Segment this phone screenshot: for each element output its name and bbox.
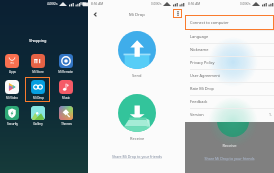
button[interactable]: Privacy Policy xyxy=(185,56,274,69)
staticText: Mi Drop xyxy=(129,12,145,18)
staticText: Music xyxy=(62,96,70,100)
staticText: User Agreement xyxy=(190,73,220,78)
staticText: Themes xyxy=(61,122,72,126)
staticText: Send xyxy=(132,73,142,78)
button[interactable]: Gallery xyxy=(25,103,50,128)
staticText: Mi Store xyxy=(32,70,44,74)
staticText: 0.00K/s xyxy=(151,2,162,6)
staticText: 4.00K/s xyxy=(47,2,58,6)
button[interactable]: Connect to computer xyxy=(185,15,274,30)
staticText: Nickname xyxy=(190,47,209,52)
staticText: Shopping xyxy=(29,38,47,43)
button[interactable]: User Agreement xyxy=(185,69,274,82)
button[interactable]: Music xyxy=(53,77,78,102)
staticText: Privacy Policy xyxy=(190,60,215,65)
staticText: 1. xyxy=(269,112,272,117)
button[interactable]: Mi Drop xyxy=(25,77,50,102)
button[interactable]: Mi Video xyxy=(0,77,24,102)
staticText: Feedback xyxy=(190,99,208,104)
button[interactable]: Apps xyxy=(0,51,24,76)
button[interactable]: Security xyxy=(0,103,24,128)
button[interactable]: Share Mi Drop to your friends xyxy=(112,154,162,159)
staticText: 8:56 AM xyxy=(91,2,104,6)
staticText: Receive xyxy=(185,143,274,148)
staticText: 8:56 AM xyxy=(188,2,201,6)
staticText: Mi Drop xyxy=(33,96,44,100)
staticText: Mi Remote xyxy=(58,70,73,74)
button[interactable]: Mi Remote xyxy=(53,51,78,76)
staticText: 99% xyxy=(80,2,86,6)
staticText: Mi Video xyxy=(6,96,18,100)
staticText: Version xyxy=(190,112,204,117)
staticText: Connect to computer xyxy=(190,20,229,25)
staticText: Share Mi Drop to your friends xyxy=(185,156,274,161)
button[interactable]: Back xyxy=(91,10,100,19)
button[interactable]: Themes xyxy=(53,103,78,128)
button[interactable]: Feedback xyxy=(185,95,274,108)
button[interactable]: Receive xyxy=(118,94,156,132)
button[interactable]: Mi Store xyxy=(25,51,50,76)
button[interactable]: Rate Mi Drop xyxy=(185,82,274,95)
button[interactable]: Language xyxy=(185,30,274,43)
staticText: Rate Mi Drop xyxy=(190,86,214,91)
staticText: 0.00K/s xyxy=(240,2,251,6)
button[interactable]: Version xyxy=(185,108,274,121)
staticText: Receive xyxy=(130,136,145,141)
button[interactable]: Nickname xyxy=(185,43,274,56)
staticText: Gallery xyxy=(33,122,43,126)
staticText: Security xyxy=(7,122,18,126)
button[interactable]: More options xyxy=(173,9,182,18)
staticText: Language xyxy=(190,34,209,39)
button[interactable]: Send xyxy=(118,31,156,69)
staticText: Apps xyxy=(9,70,16,74)
